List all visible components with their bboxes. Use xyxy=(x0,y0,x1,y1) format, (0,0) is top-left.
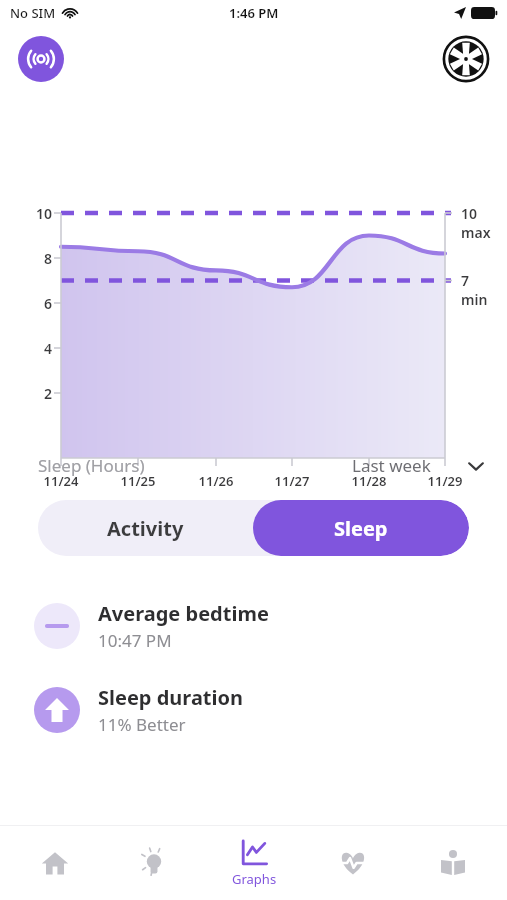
button[interactable]: Average bedtime xyxy=(0,596,507,656)
staticText: Sleep duration xyxy=(98,684,244,711)
staticText: 11/24 xyxy=(31,472,91,490)
staticText: Graphs xyxy=(232,870,277,888)
button[interactable]: Tips xyxy=(109,826,199,900)
button[interactable]: Library xyxy=(408,826,498,900)
staticText: No SIM xyxy=(10,4,56,22)
button[interactable]: Device status xyxy=(18,36,64,82)
staticText: 11/28 xyxy=(339,472,399,490)
button[interactable]: Graphs xyxy=(209,826,299,900)
staticText: 1:46 PM xyxy=(229,4,279,22)
staticText: 2 xyxy=(30,384,52,403)
staticText: min xyxy=(461,290,488,309)
staticText: 11/27 xyxy=(262,472,322,490)
button[interactable]: Heart xyxy=(308,826,398,900)
staticText: 11/26 xyxy=(186,472,246,490)
staticText: max xyxy=(461,223,491,242)
staticText: 10:47 PM xyxy=(98,629,172,652)
staticText: 4 xyxy=(30,339,52,358)
staticText: Activity xyxy=(107,515,184,542)
button[interactable]: Sleep xyxy=(253,500,469,556)
staticText: Average bedtime xyxy=(98,600,269,627)
staticText: 10 xyxy=(30,204,52,223)
staticText: Last week xyxy=(352,454,431,477)
staticText: Sleep (Hours) xyxy=(38,454,145,477)
staticText: 7 xyxy=(461,271,470,290)
staticText: 8 xyxy=(30,249,52,268)
staticText: 11% Better xyxy=(98,713,186,736)
staticText: Sleep xyxy=(334,515,388,542)
button[interactable]: Activity xyxy=(38,500,253,556)
staticText: 6 xyxy=(30,294,52,313)
button[interactable]: Last week xyxy=(348,450,507,481)
button[interactable]: Sleep duration xyxy=(0,680,507,740)
button[interactable]: Home xyxy=(10,826,100,900)
staticText: 11/29 xyxy=(415,472,475,490)
button[interactable]: Profile xyxy=(443,36,489,82)
staticText: 10 xyxy=(461,204,478,223)
staticText: 11/25 xyxy=(108,472,168,490)
